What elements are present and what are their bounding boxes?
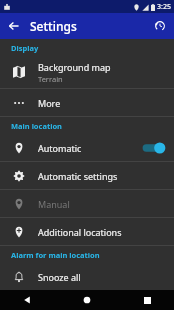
staticText: More (38, 97, 61, 109)
button[interactable]: Background map (0, 56, 174, 88)
staticText: Snooze all (38, 271, 81, 283)
button[interactable]: Manual (0, 190, 174, 217)
button[interactable]: Snooze all (0, 263, 174, 290)
button[interactable]: History (150, 16, 170, 36)
staticText: Settings (30, 18, 77, 34)
staticText: Manual (38, 198, 70, 210)
staticText: Automatic (38, 142, 82, 154)
button[interactable]: Recents (138, 291, 156, 309)
staticText: Automatic settings (38, 170, 118, 182)
staticText: 3:25 (157, 2, 171, 12)
button[interactable]: More (0, 89, 174, 116)
staticText: Main location (11, 121, 62, 131)
staticText: Display (11, 43, 39, 53)
button[interactable]: Back (18, 291, 36, 309)
staticText: Background map (38, 61, 111, 73)
button[interactable]: Additional locations (0, 218, 174, 245)
staticText: Terrain (38, 74, 63, 84)
button[interactable]: Automatic settings (0, 162, 174, 189)
staticText: Additional locations (38, 226, 122, 238)
button[interactable]: Back (4, 16, 24, 36)
button[interactable]: Automatic (0, 134, 174, 161)
staticText: Alarm for main location (11, 250, 100, 260)
button[interactable]: Home (78, 291, 96, 309)
